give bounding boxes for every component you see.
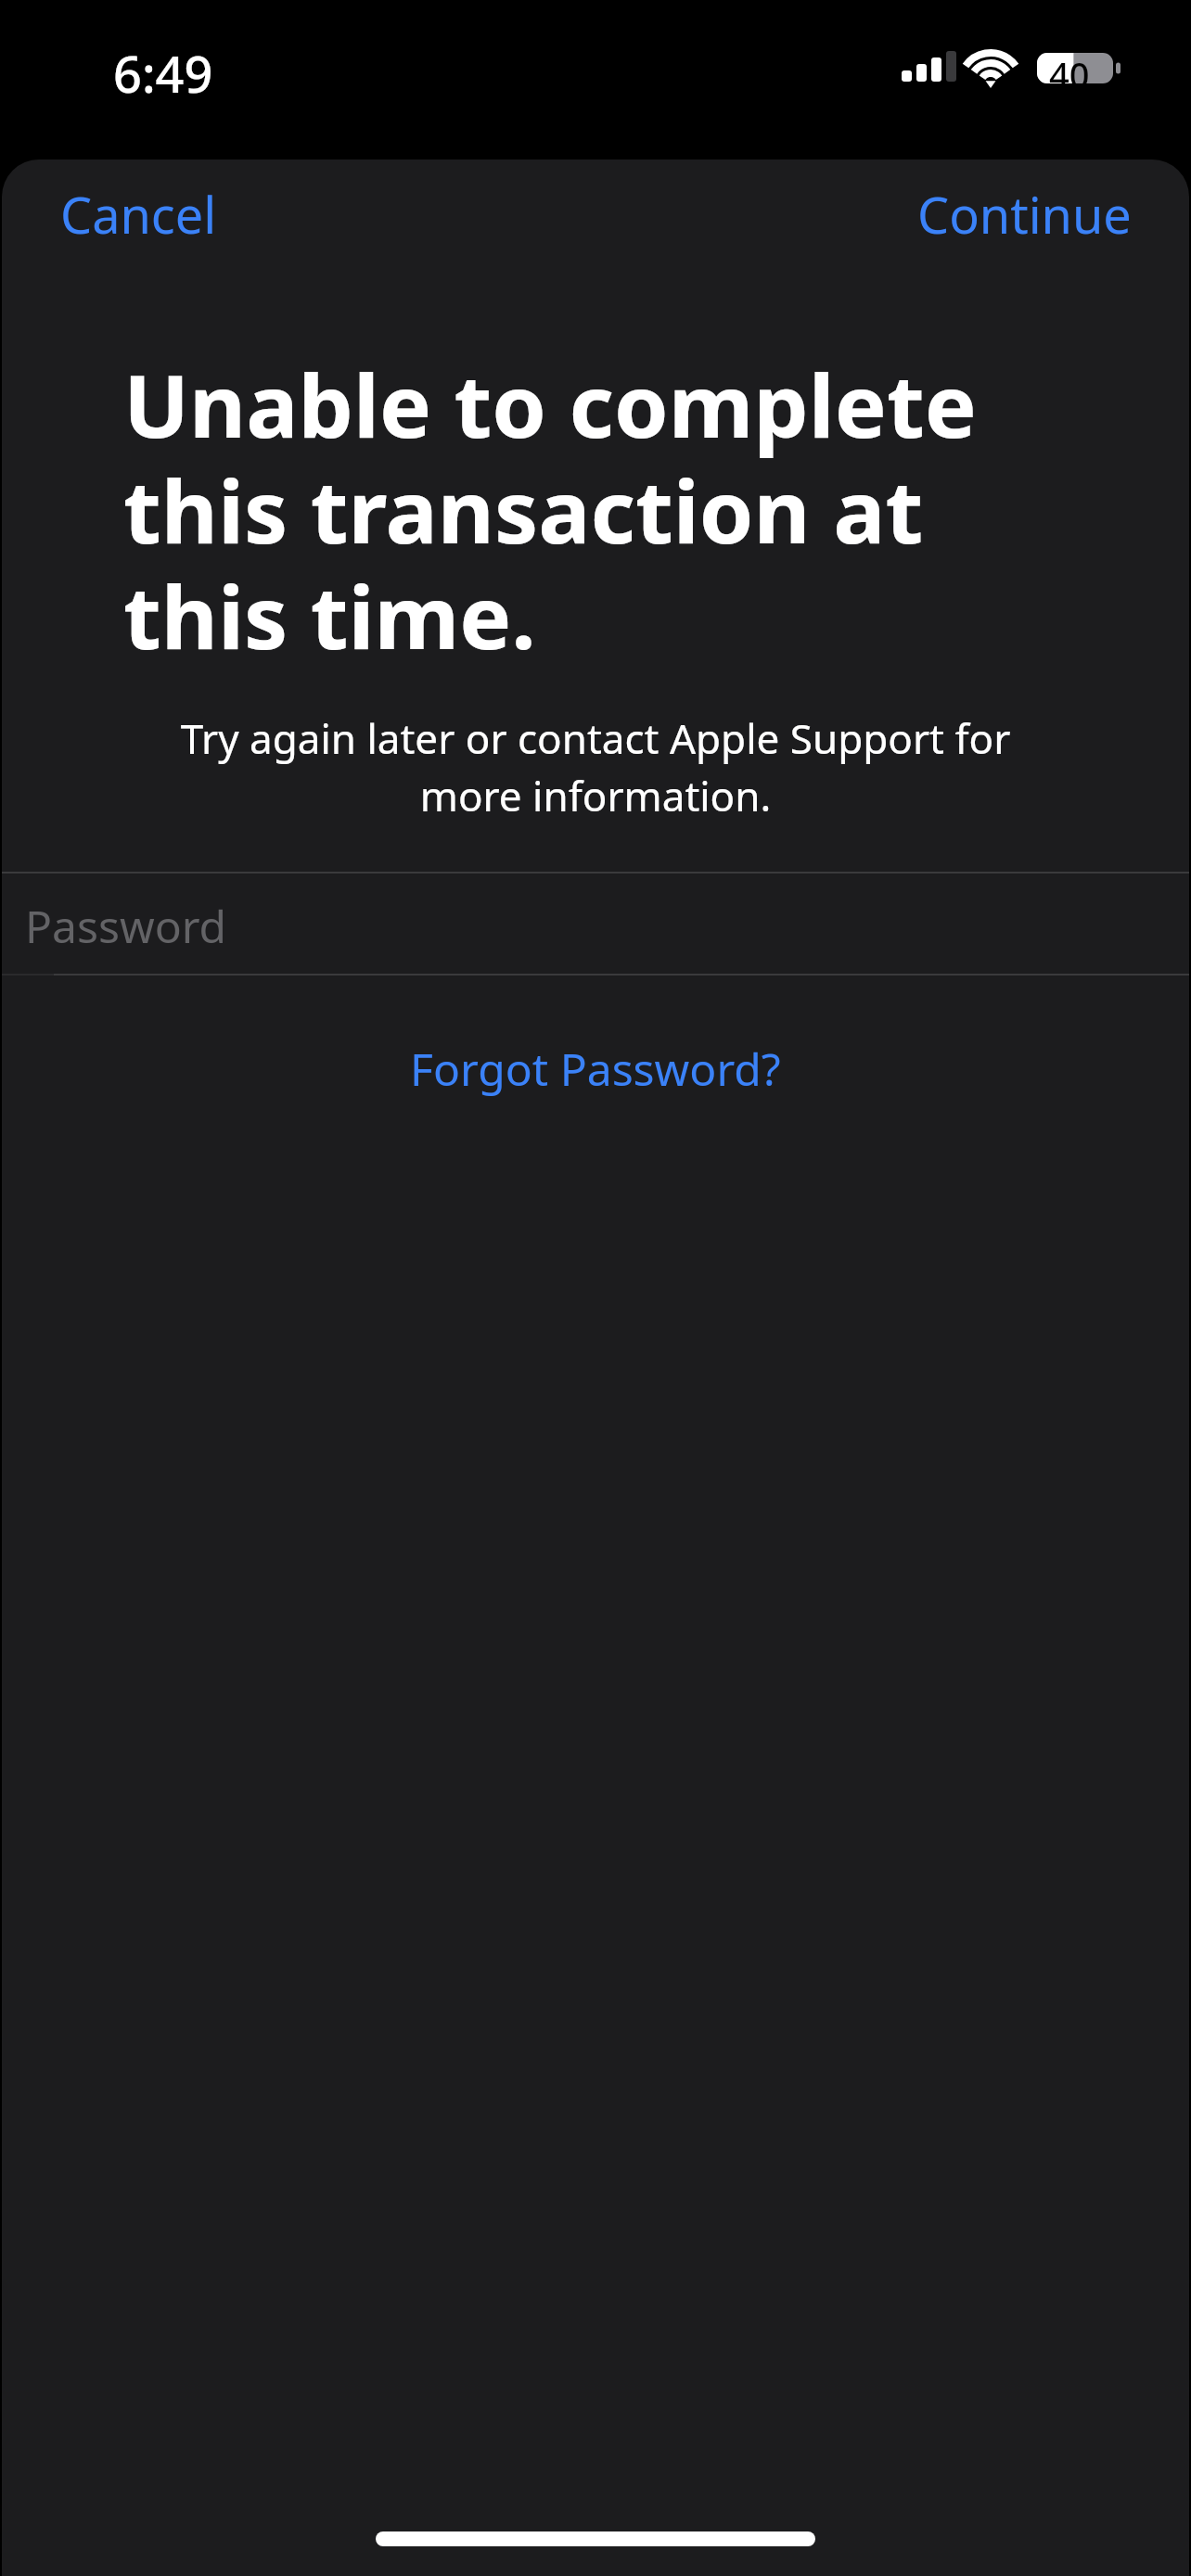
staticText: 40 <box>1049 50 1090 98</box>
staticText: Unable to complete this transaction at t… <box>123 345 1070 675</box>
button[interactable]: Password <box>2 872 1189 976</box>
button[interactable]: Forgot Password? <box>388 1027 803 1110</box>
staticText: Forgot Password? <box>410 1039 781 1099</box>
staticText: Password <box>25 896 227 956</box>
staticText: Try again later or contact Apple Support… <box>141 710 1050 823</box>
staticText: Continue <box>917 180 1132 249</box>
button[interactable]: Continue <box>896 167 1153 261</box>
staticText: Cancel <box>60 180 217 249</box>
staticText: 6:49 <box>113 39 213 108</box>
button[interactable]: Cancel <box>39 167 238 261</box>
